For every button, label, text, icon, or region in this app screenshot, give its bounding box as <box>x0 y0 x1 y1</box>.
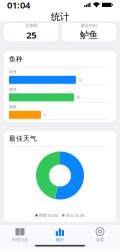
staticText: 鲫鱼 <box>9 104 17 109</box>
staticText: 10 <box>76 95 80 100</box>
staticText: 晴朗 50.0% <box>39 213 58 218</box>
staticText: 统计 <box>51 11 69 23</box>
staticText: 钓鱼日志 <box>12 237 28 242</box>
staticText: 多云 50.0% <box>66 213 85 218</box>
button[interactable]: 最常钓到 <box>61 23 116 41</box>
staticText: 设置 <box>96 237 104 242</box>
staticText: 鱼种 <box>9 55 23 63</box>
staticText: 鲤鱼 <box>9 87 17 92</box>
button[interactable]: 统计 <box>40 227 80 242</box>
staticText: 鲈鱼 <box>80 29 98 41</box>
staticText: 总渔获 <box>25 23 37 28</box>
staticText: 12 <box>78 77 82 82</box>
staticText: 最常钓到 <box>81 23 97 28</box>
button[interactable]: 钓鱼日志 <box>0 227 40 242</box>
button[interactable]: 设置 <box>80 227 120 242</box>
staticText: 统计 <box>56 237 64 242</box>
button[interactable]: 总渔获 <box>4 23 58 41</box>
staticText: 25 <box>26 29 36 41</box>
staticText: 01:04 <box>7 0 30 11</box>
staticText: 鲈鱼 <box>9 69 17 74</box>
staticText: 最佳天气 <box>9 134 37 143</box>
staticText: 3 <box>43 112 45 117</box>
